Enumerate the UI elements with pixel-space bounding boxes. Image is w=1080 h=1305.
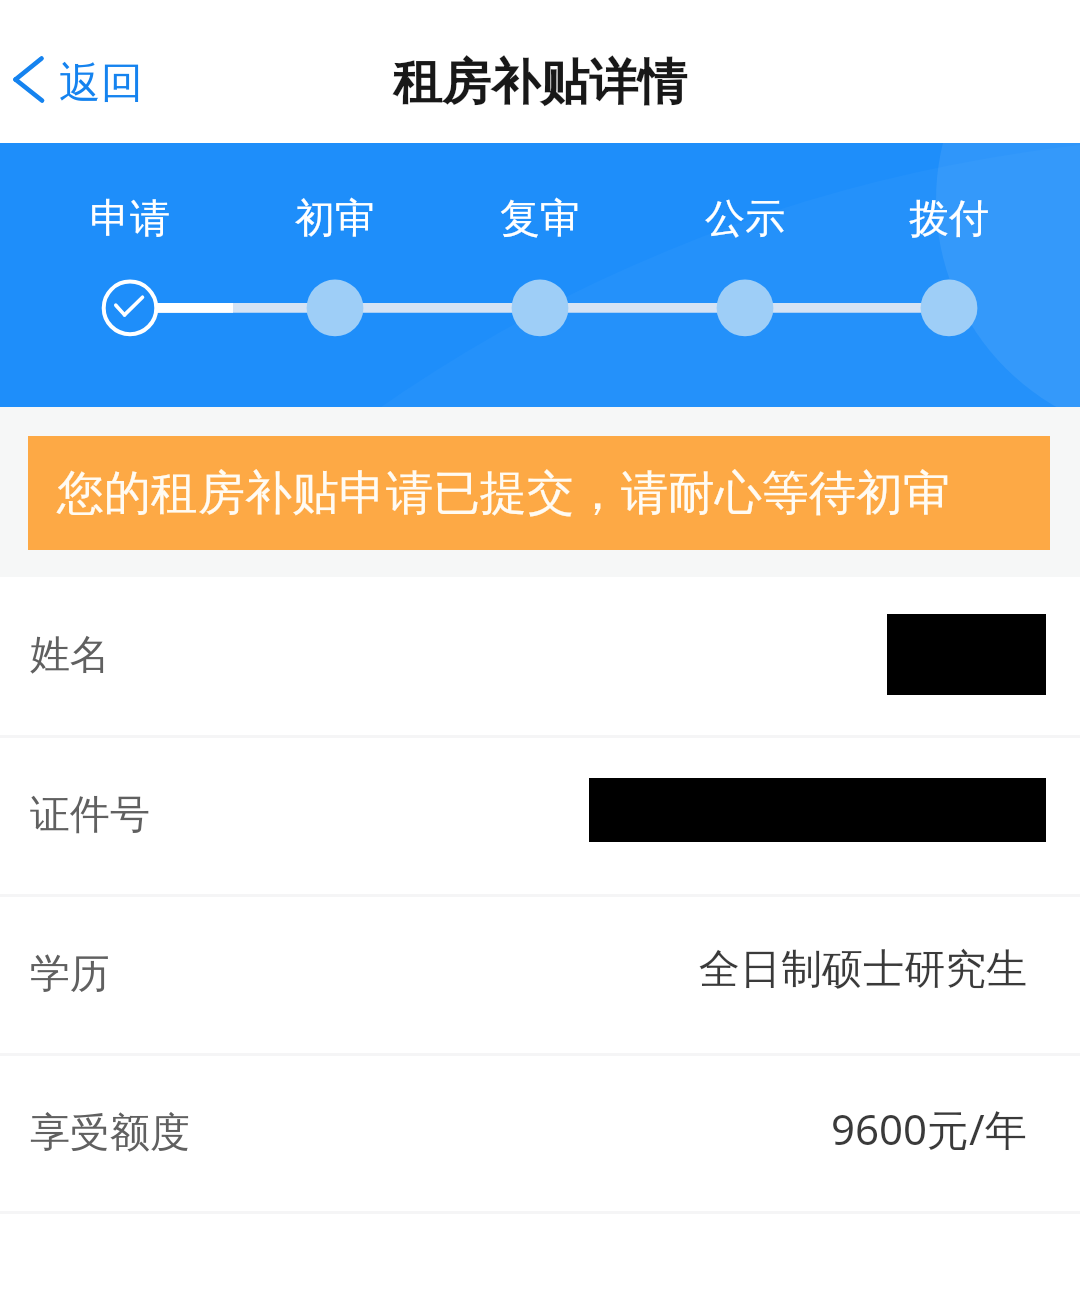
staticText: 申请: [90, 193, 170, 243]
staticText: 全日制硕士研究生: [699, 944, 1027, 996]
button[interactable]: 返回: [0, 0, 167, 143]
button[interactable]: 享受额度: [0, 1056, 1080, 1211]
staticText: 返回: [59, 57, 143, 110]
staticText: 公示: [705, 193, 785, 243]
button[interactable]: 公示: [670, 193, 820, 303]
button[interactable]: 您的租房补贴申请已提交，请耐心等待初审: [28, 436, 1050, 550]
button[interactable]: 姓名: [0, 577, 1080, 735]
button[interactable]: 申请: [55, 193, 205, 303]
button[interactable]: 学历: [0, 897, 1080, 1053]
staticText: 证件号: [30, 789, 150, 839]
staticText: 姓名: [30, 629, 110, 679]
button[interactable]: 拨付: [874, 193, 1024, 303]
staticText: 您的租房补贴申请已提交，请耐心等待初审: [57, 464, 950, 523]
staticText: 租房补贴详情: [393, 52, 687, 114]
button[interactable]: 初审: [260, 193, 410, 303]
staticText: 初审: [295, 193, 375, 243]
staticText: 拨付: [909, 193, 989, 243]
button[interactable]: 复审: [465, 193, 615, 303]
staticText: 9600元/年: [831, 1100, 1027, 1157]
staticText: 享受额度: [30, 1107, 190, 1157]
staticText: 复审: [500, 193, 580, 243]
staticText: 学历: [30, 948, 110, 998]
button[interactable]: 证件号: [0, 738, 1080, 894]
